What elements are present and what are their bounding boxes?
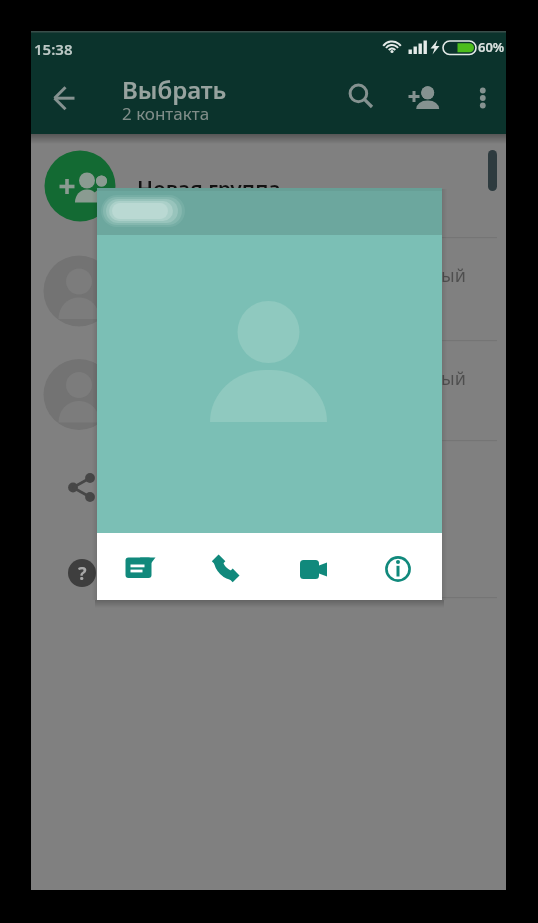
staticText: Новая группа <box>137 175 281 204</box>
button[interactable] <box>31 534 506 597</box>
staticText: 60% <box>478 38 505 56</box>
staticText: ый <box>441 263 466 288</box>
button[interactable] <box>31 441 506 534</box>
button[interactable] <box>289 543 337 591</box>
button[interactable] <box>462 72 504 114</box>
button[interactable] <box>31 238 506 340</box>
button[interactable] <box>116 543 164 591</box>
staticText: 15:38 <box>34 39 73 59</box>
staticText: ый <box>441 366 466 391</box>
button[interactable] <box>202 543 250 591</box>
button[interactable] <box>337 72 379 114</box>
button[interactable] <box>31 143 506 237</box>
button[interactable] <box>400 72 442 114</box>
button[interactable] <box>43 77 85 119</box>
button[interactable] <box>97 188 442 533</box>
button[interactable] <box>374 543 422 591</box>
staticText: ? <box>78 561 87 586</box>
staticText: 2 контакта <box>122 102 210 125</box>
staticText: Выбрать <box>122 73 227 106</box>
button[interactable] <box>31 341 506 440</box>
